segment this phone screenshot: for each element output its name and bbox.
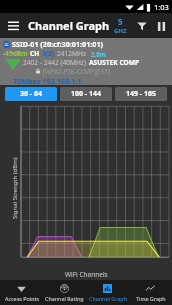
staticText: 1:03 — [154, 2, 169, 12]
staticText: Signal Strength (dBm) — [11, 157, 19, 219]
staticText: 2402 - 2442 (40MHz) — [23, 58, 86, 67]
button[interactable]: Open navigation drawer — [5, 17, 22, 34]
button[interactable]: Pause — [154, 17, 168, 35]
staticText: -49dBm — [3, 49, 28, 58]
button[interactable]: Channel Rating — [43, 280, 86, 305]
staticText: 72Mbps 192.168.1.1 — [13, 76, 82, 85]
staticText: 100 - 144 — [71, 89, 101, 99]
staticText: CH — [30, 49, 40, 58]
staticText: Time Graph — [136, 295, 166, 302]
button[interactable]: Time Graph — [129, 280, 172, 305]
staticText: [WPA2-PSK-CCMP][ESS] — [43, 67, 111, 75]
staticText: 5 — [118, 16, 123, 27]
button[interactable]: 36 - 64 — [5, 87, 57, 101]
staticText: WiFi Channels — [65, 270, 108, 279]
staticText: 149 - 165 — [126, 89, 156, 99]
staticText: SSID-01 (20:cf:30:01:01:01) — [12, 39, 103, 49]
staticText: Channel Graph — [28, 18, 110, 33]
staticText: Channel Graph — [89, 295, 127, 302]
button[interactable]: Filter — [133, 17, 151, 35]
staticText: Channel Rating — [45, 295, 84, 302]
staticText: 2412MHz — [57, 49, 87, 58]
button[interactable]: 149 - 165 — [115, 87, 167, 101]
button[interactable]: Switch WiFi band, 5 GHz — [110, 13, 130, 38]
staticText: Access Points — [5, 295, 39, 302]
button[interactable]: SSID-01 (20:cf:30:01:01:01) — [0, 38, 172, 85]
button[interactable]: 100 - 144 — [60, 87, 112, 101]
staticText: GHZ — [114, 27, 127, 35]
staticText: ASUSTEK COMP — [89, 58, 140, 67]
button[interactable]: Channel Graph — [86, 280, 129, 305]
staticText: 36 - 64 — [20, 89, 42, 99]
staticText: 1(3) — [42, 49, 55, 58]
staticText: 2.8m — [91, 50, 106, 58]
button[interactable]: Access Points — [0, 280, 43, 305]
